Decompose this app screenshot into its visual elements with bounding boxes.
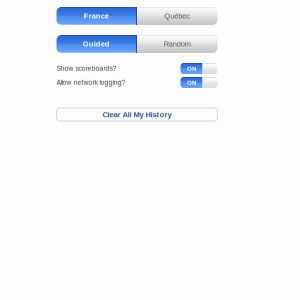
staticText: ON <box>187 65 196 72</box>
staticText: Show scoreboards? <box>56 65 116 72</box>
staticText: ON <box>187 79 196 86</box>
staticText: Allow network logging? <box>56 79 125 86</box>
staticText: Clear All My History <box>102 110 171 119</box>
button[interactable]: Clear All My History <box>56 108 217 121</box>
staticText: Guided <box>83 40 110 48</box>
button[interactable]: France <box>56 7 136 25</box>
staticText: Québec <box>164 12 190 20</box>
button[interactable]: Toggle on <box>180 77 217 88</box>
button[interactable]: Random <box>137 35 217 53</box>
button[interactable]: Guided <box>56 35 136 53</box>
staticText: Random <box>164 40 191 48</box>
staticText: France <box>84 12 109 20</box>
button[interactable]: Québec <box>137 7 217 25</box>
button[interactable]: Toggle on <box>180 63 217 74</box>
